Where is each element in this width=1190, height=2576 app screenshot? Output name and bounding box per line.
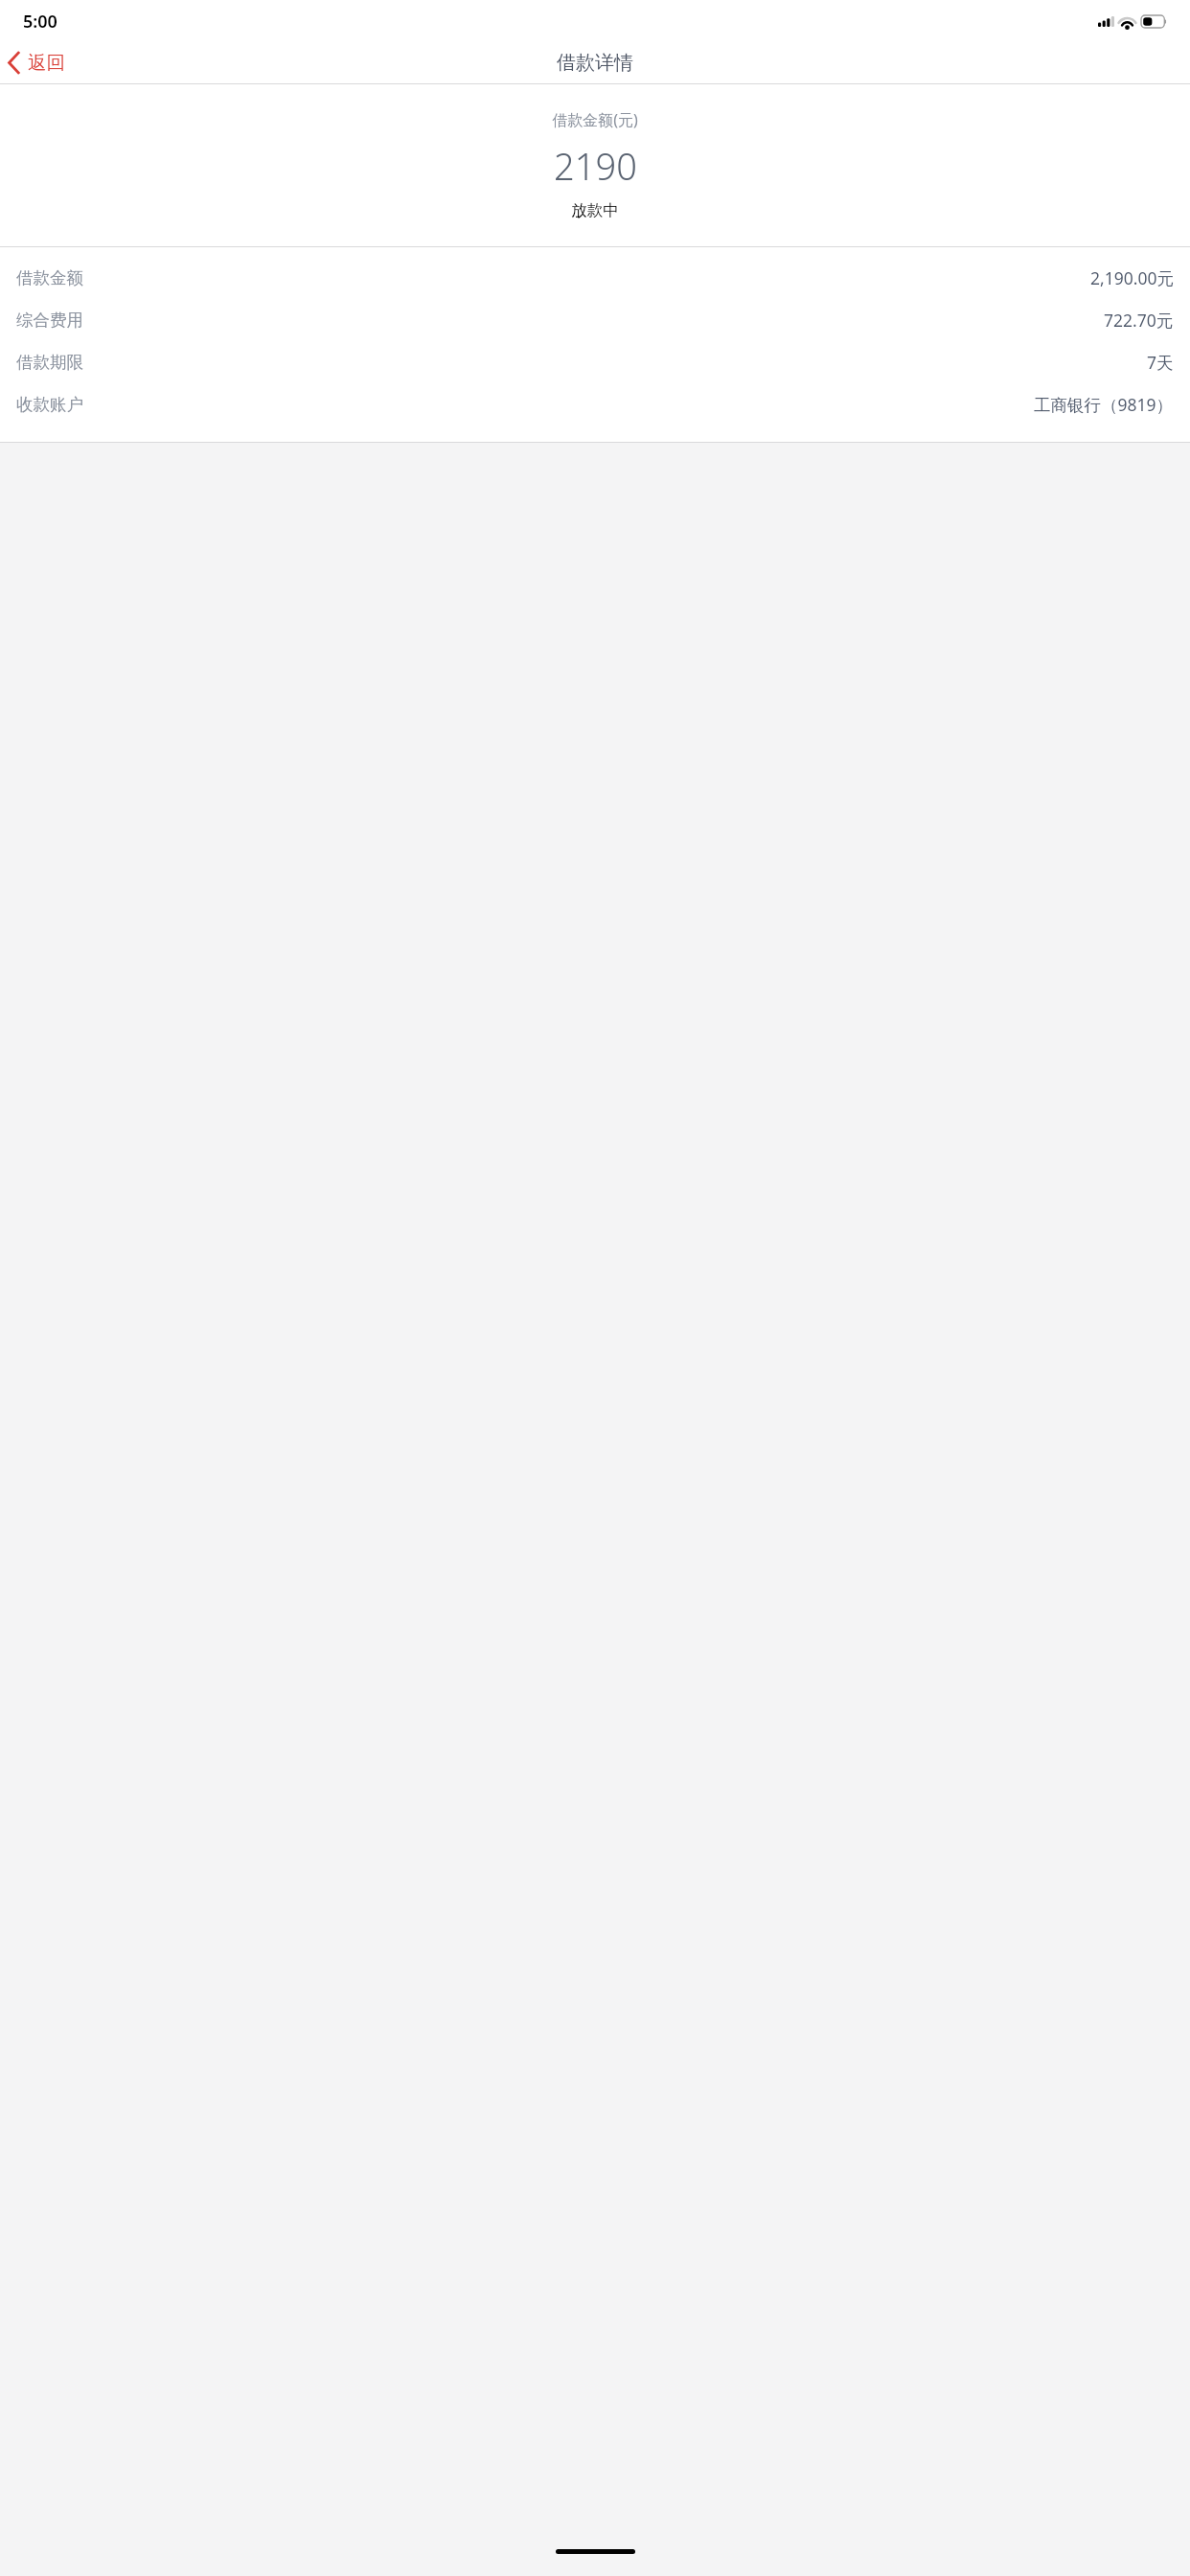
staticText: 收款账户 [16,394,83,415]
staticText: 工商银行（9819） [1034,393,1174,416]
staticText: 2,190.00元 [1090,266,1174,289]
button[interactable]: 收款账户 [0,383,1190,425]
button[interactable]: 返回 [0,46,79,80]
staticText: 722.70元 [1104,309,1174,332]
staticText: 综合费用 [16,310,83,331]
button[interactable]: 借款金额 [0,257,1190,299]
button[interactable]: 借款期限 [0,341,1190,383]
staticText: 借款金额 [16,267,83,288]
button[interactable]: 综合费用 [0,299,1190,341]
staticText: 返回 [28,51,65,75]
staticText: 借款详情 [557,51,633,75]
staticText: 借款期限 [16,352,83,373]
staticText: 放款中 [571,200,619,220]
staticText: 7天 [1147,351,1174,374]
staticText: 5:00 [23,10,57,34]
staticText: 2190 [554,141,637,191]
staticText: 借款金额(元) [552,109,638,130]
